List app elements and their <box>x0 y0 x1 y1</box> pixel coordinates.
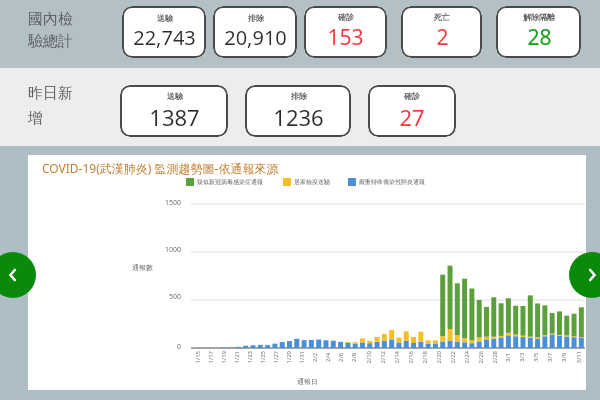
staticText: 送驗 <box>167 91 183 101</box>
staticText: 2/24 <box>462 350 470 363</box>
staticText: 通報日 <box>297 377 318 386</box>
staticText: 1000 <box>165 245 182 255</box>
staticText: 28 <box>527 23 552 52</box>
staticText: 3/11 <box>574 350 582 363</box>
staticText: 2 <box>436 23 449 52</box>
staticText: 1387 <box>149 102 200 132</box>
staticText: 排除 <box>248 13 264 23</box>
staticText: 2/8 <box>350 352 358 362</box>
staticText: 1/25 <box>258 350 266 363</box>
staticText: 3/9 <box>560 352 568 362</box>
button[interactable]: Next <box>569 252 600 298</box>
staticText: 1/19 <box>219 350 227 363</box>
staticText: 確診 <box>338 12 354 22</box>
staticText: 3/5 <box>532 352 540 362</box>
staticText: COVID-19(武漢肺炎) 監測趨勢圖-依通報來源 <box>42 160 279 176</box>
staticText: 死亡 <box>434 12 450 22</box>
staticText: 排除 <box>291 91 307 101</box>
staticText: 1/23 <box>245 350 253 363</box>
staticText: 居家檢疫送驗 <box>294 178 330 186</box>
staticText: 20,910 <box>224 24 287 51</box>
staticText: 昨日新 增 <box>28 84 73 127</box>
staticText: 疑似新冠病毒感染症通報 <box>197 178 263 186</box>
button[interactable]: COVID-19(武漢肺炎) 監測趨勢圖-依通報來源 <box>28 155 586 390</box>
staticText: 3/3 <box>518 352 526 362</box>
staticText: 22,743 <box>133 24 196 51</box>
staticText: 1/31 <box>297 350 305 363</box>
staticText: 1/15 <box>193 350 201 363</box>
staticText: 通報數 <box>132 263 153 272</box>
staticText: 1236 <box>273 102 324 132</box>
staticText: 2/28 <box>490 350 498 363</box>
button[interactable]: 送驗 <box>120 85 228 137</box>
staticText: 2/16 <box>406 350 414 363</box>
button[interactable]: 確診 <box>368 85 456 137</box>
staticText: 國內檢 驗總計 <box>28 10 73 51</box>
staticText: 1/21 <box>232 350 240 363</box>
staticText: 2/6 <box>337 352 345 362</box>
staticText: 2/14 <box>392 350 400 363</box>
staticText: 153 <box>327 23 364 52</box>
staticText: 2/4 <box>324 352 332 362</box>
staticText: 嚴重特殊傳染性肺炎通報 <box>359 178 425 186</box>
staticText: 3/1 <box>504 352 512 362</box>
staticText: 2/20 <box>434 350 442 363</box>
staticText: 1/29 <box>284 350 292 363</box>
staticText: 2/12 <box>378 350 386 363</box>
staticText: 2/10 <box>364 350 372 363</box>
button[interactable]: 排除 <box>245 85 351 137</box>
staticText: 1500 <box>165 198 182 208</box>
staticText: 3/7 <box>546 352 554 362</box>
staticText: 2/18 <box>420 350 428 363</box>
staticText: 2/2 <box>311 352 319 362</box>
staticText: 2/26 <box>476 350 484 363</box>
staticText: 送驗 <box>157 13 173 23</box>
staticText: 27 <box>399 102 425 132</box>
staticText: 1/17 <box>206 350 214 363</box>
button[interactable]: 排除 <box>213 6 297 58</box>
staticText: 2/22 <box>448 350 456 363</box>
button[interactable]: Previous <box>0 252 36 298</box>
button[interactable]: 確診 <box>304 6 387 58</box>
staticText: 500 <box>169 292 182 302</box>
staticText: 0 <box>177 342 182 352</box>
staticText: 確診 <box>404 91 420 101</box>
button[interactable]: 解除隔離 <box>496 6 581 58</box>
staticText: 解除隔離 <box>523 12 555 22</box>
button[interactable]: 送驗 <box>122 6 206 58</box>
button[interactable]: 死亡 <box>401 6 482 58</box>
staticText: 1/27 <box>271 350 279 363</box>
